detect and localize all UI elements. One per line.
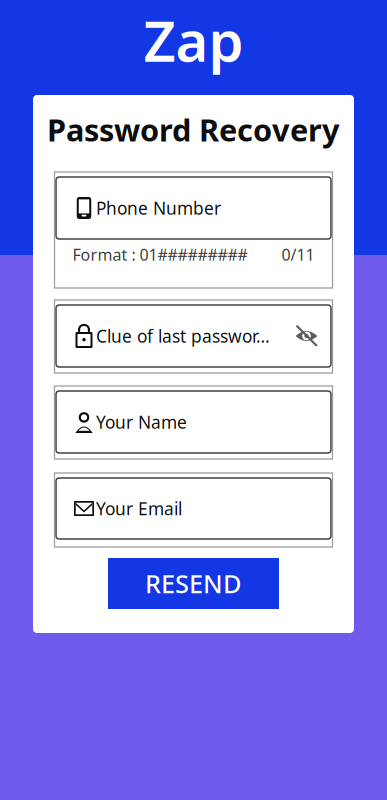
staticText: Your Email bbox=[96, 497, 182, 520]
button[interactable]: Phone Number bbox=[56, 177, 331, 239]
button[interactable]: Your Name bbox=[56, 391, 331, 453]
staticText: Clue of last passwor… bbox=[96, 324, 270, 347]
staticText: RESEND bbox=[145, 567, 242, 600]
staticText: Format : 01######### bbox=[72, 244, 247, 265]
staticText: Your Name bbox=[96, 410, 187, 433]
staticText: Phone Number bbox=[96, 196, 221, 219]
staticText: 0/11 bbox=[281, 244, 314, 265]
staticText: Zap bbox=[143, 3, 243, 77]
button[interactable]: Your Email bbox=[56, 478, 331, 539]
button[interactable]: RESEND bbox=[108, 558, 279, 609]
staticText: Password Recovery bbox=[47, 109, 340, 150]
button[interactable]: Clue of last passwor… bbox=[56, 305, 331, 367]
